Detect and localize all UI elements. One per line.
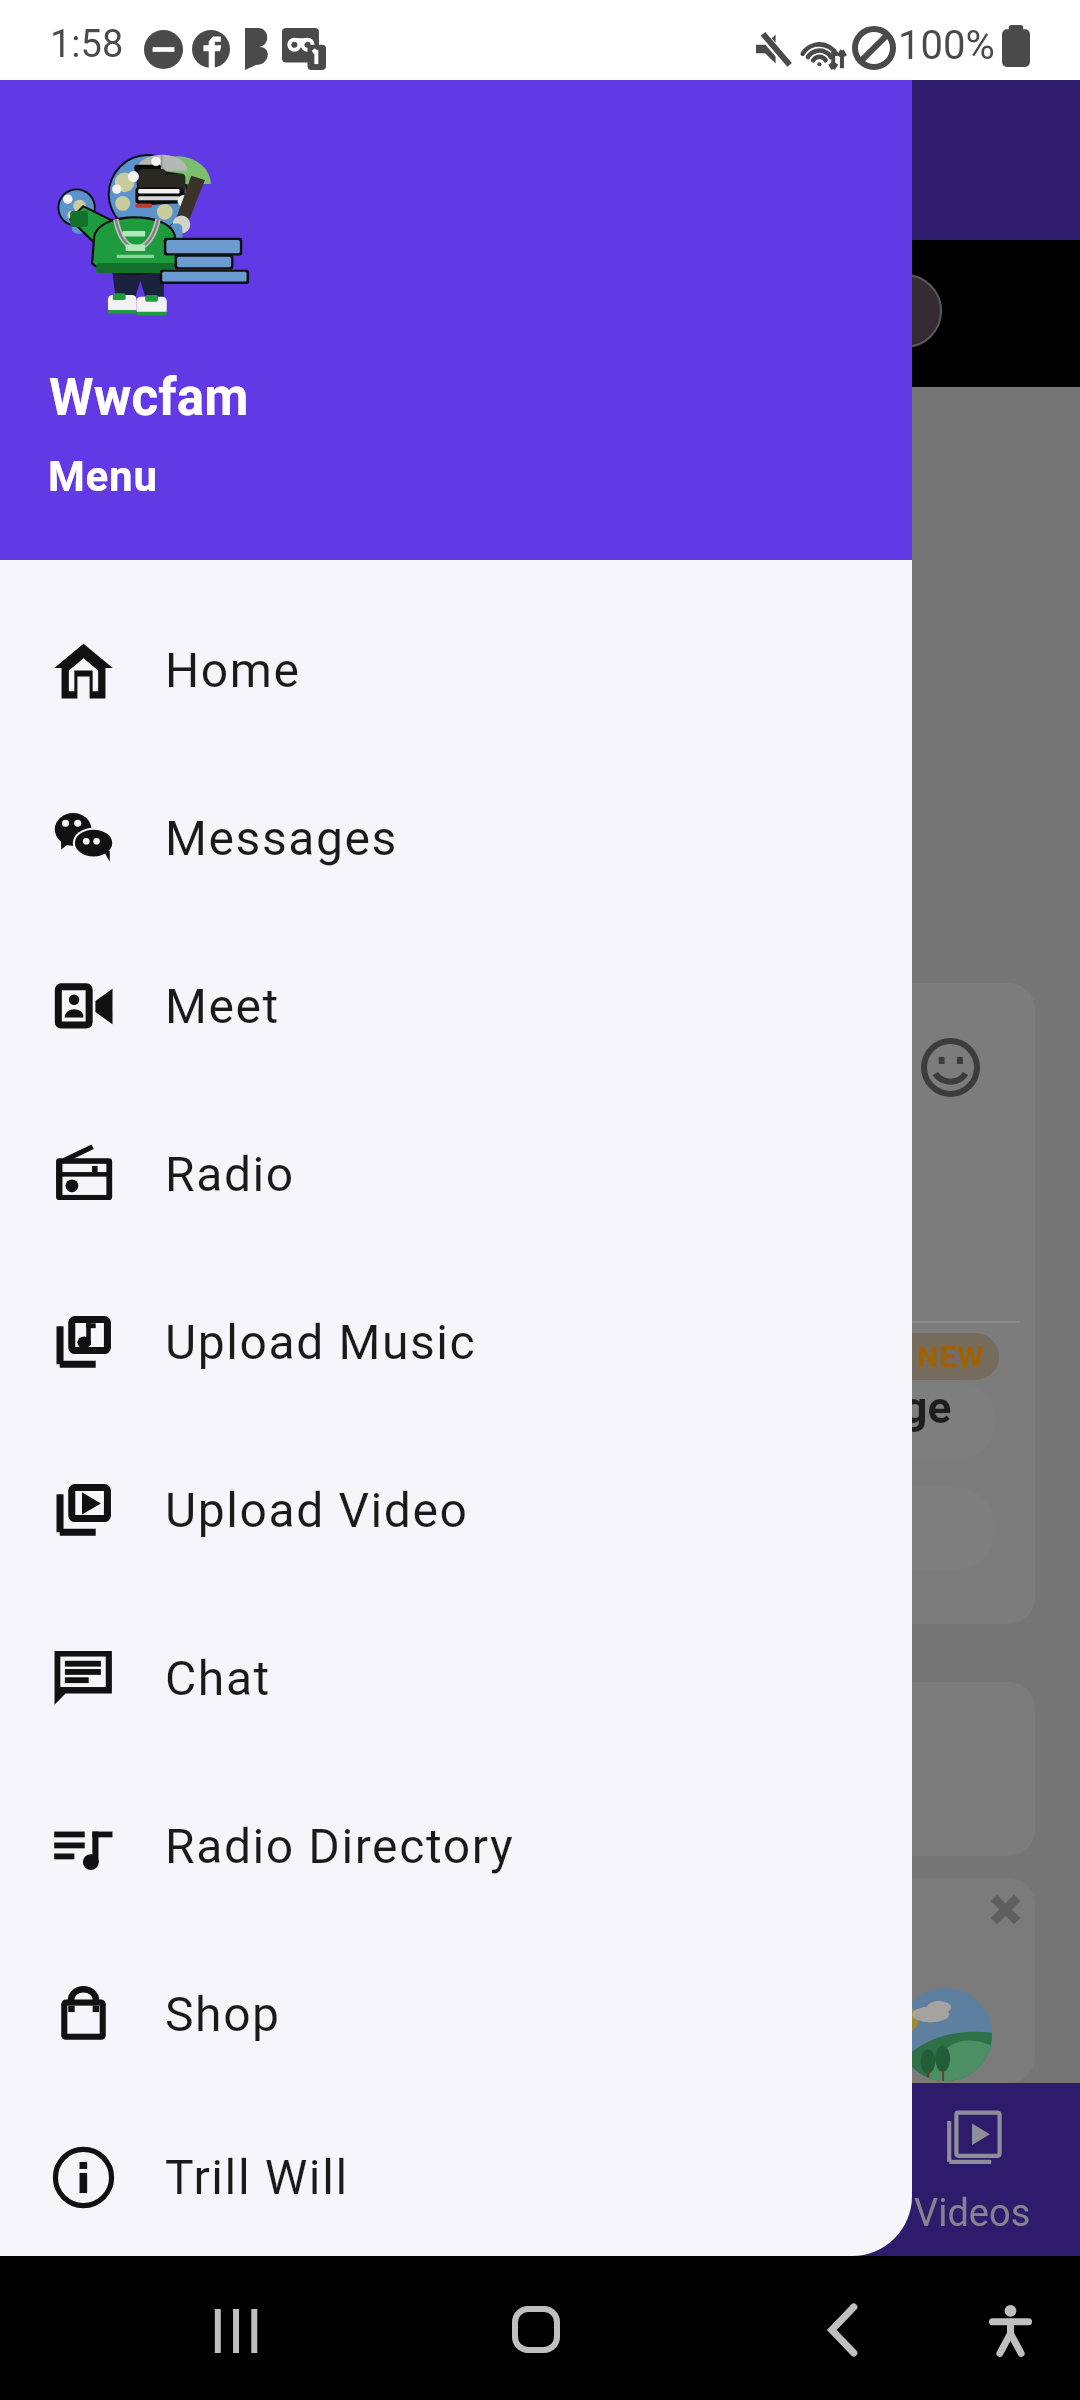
button[interactable]: Radio (0, 1090, 912, 1258)
button[interactable]: Home (0, 586, 912, 754)
staticText: Videos (914, 2191, 1031, 2236)
button[interactable]: Shop (0, 1930, 912, 2098)
button[interactable]: Videos (880, 2083, 1080, 2256)
staticText: NEW (917, 1339, 985, 1374)
staticText: Radio Directory (165, 1818, 515, 1874)
staticText: Village (815, 1382, 952, 1434)
button[interactable]: Close (961, 1865, 1050, 1954)
staticText: Trill Will (165, 2149, 349, 2205)
staticText: Shop (165, 1986, 281, 2042)
staticText: Wwcfam (49, 368, 249, 428)
staticText: 100% (898, 22, 995, 69)
staticText: Home (165, 642, 301, 698)
button[interactable]: Chat (0, 1594, 912, 1762)
staticText: Meet (165, 978, 280, 1034)
button[interactable]: Back (770, 2274, 910, 2384)
staticText: Messages (165, 810, 398, 866)
button[interactable]: Accessibility (940, 2274, 1080, 2384)
staticText: Chat (165, 1650, 271, 1706)
staticText: Menu (48, 452, 158, 501)
staticText: Upload Video (165, 1482, 469, 1538)
button[interactable]: Upload Video (0, 1426, 912, 1594)
staticText: 1:58 (50, 22, 124, 67)
button[interactable]: Trill Will (0, 2098, 912, 2256)
staticText: Radio (165, 1146, 295, 1202)
button[interactable]: Radio Directory (0, 1762, 912, 1930)
staticText: Upload Music (165, 1314, 477, 1370)
button[interactable]: Meet (0, 922, 912, 1090)
button[interactable]: Recent apps (166, 2274, 306, 2384)
button[interactable]: Home (466, 2274, 606, 2384)
button[interactable]: Upload Music (0, 1258, 912, 1426)
button[interactable]: Messages (0, 754, 912, 922)
